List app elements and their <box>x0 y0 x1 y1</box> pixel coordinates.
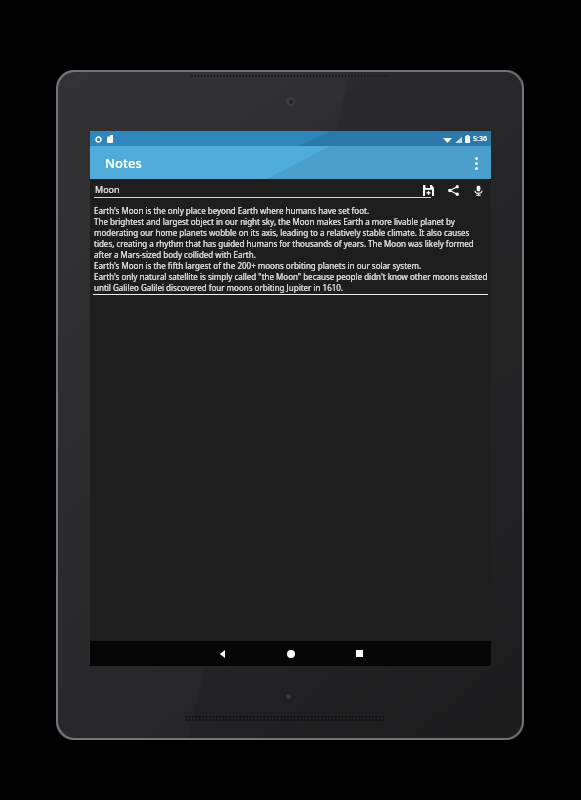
button[interactable]: Home <box>269 641 313 666</box>
button[interactable]: Save <box>420 182 436 198</box>
button[interactable]: Voice input <box>470 182 486 198</box>
button[interactable]: Notes <box>90 146 491 179</box>
staticText: Earth's Moon is the only place beyond Ea… <box>94 205 488 293</box>
staticText: Notes <box>105 154 142 172</box>
button[interactable]: More options <box>461 148 491 178</box>
button[interactable]: Back <box>201 641 245 666</box>
staticText: 5:36 <box>473 134 487 144</box>
button[interactable]: Earth's Moon is the only place beyond Ea… <box>90 201 491 295</box>
button[interactable]: Recent apps <box>337 641 381 666</box>
button[interactable]: Moon <box>95 183 120 195</box>
button[interactable]: Share <box>445 182 461 198</box>
